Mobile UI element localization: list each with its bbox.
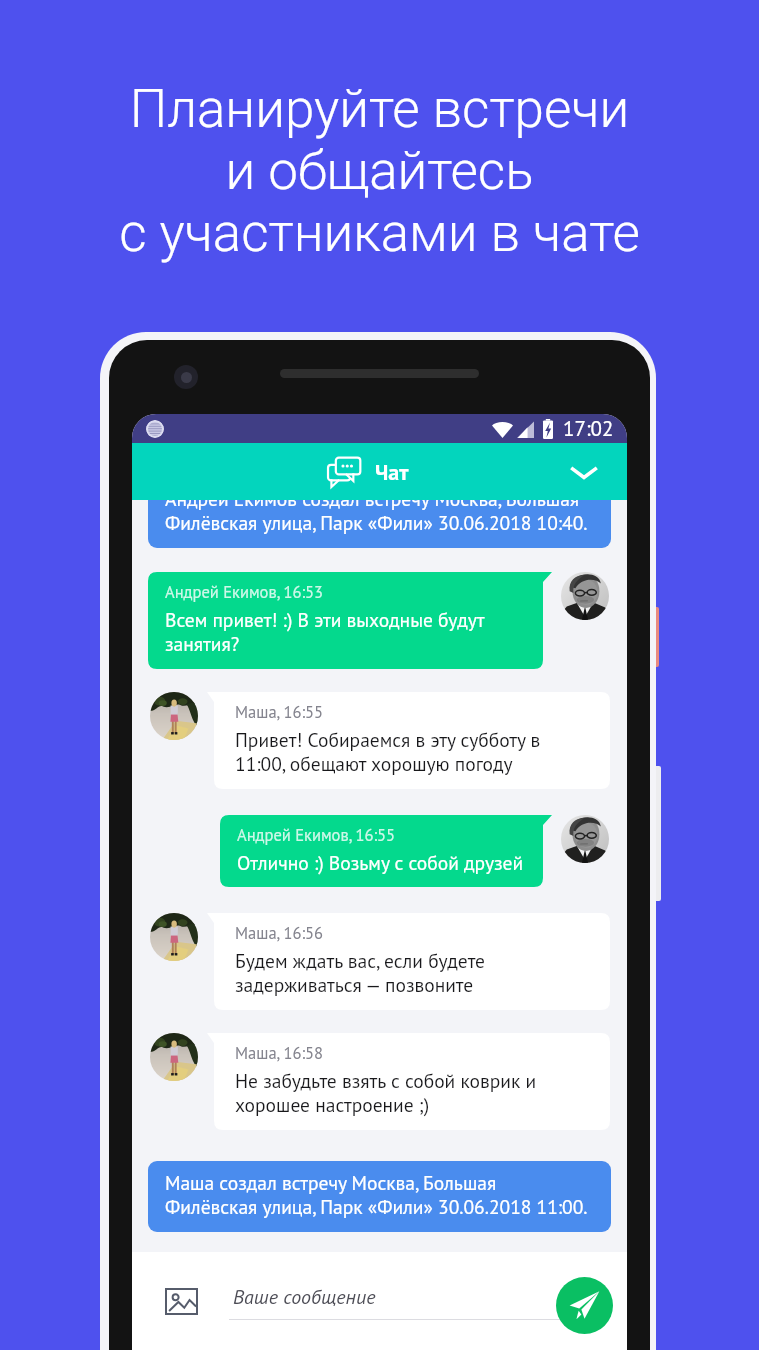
button[interactable]: Attach image [160,1280,202,1322]
button[interactable]: Маша, 16:56 [207,913,610,1010]
staticText: Привет! Собираемся в эту субботу в 11:00… [235,727,541,777]
button[interactable]: Маша создал встречу Москва, Большая Филё… [148,1161,611,1232]
staticText: Маша, 16:58 [235,1042,323,1063]
button[interactable]: Андрей Екимов создал встречу Москва, Бол… [148,477,611,548]
staticText: Всем привет! :) В эти выходные будут зан… [165,607,485,657]
staticText: 17:02 [563,415,614,442]
staticText: Маша, 16:56 [235,922,323,943]
staticText: Планируйте встречи и общайтесь с участни… [119,78,640,264]
button[interactable]: Андрей Екимов, 16:53 [148,572,552,669]
button[interactable]: Маша, 16:58 [207,1033,610,1130]
staticText: Не забудьте взять с собой коврик и хорош… [235,1068,537,1118]
staticText: Андрей Екимов создал встречу Москва, Бол… [165,486,588,536]
staticText: Андрей Екимов, 16:55 [237,824,396,845]
staticText: Чат [375,458,409,486]
staticText: Будем ждать вас, если будете задерживать… [235,948,486,998]
button[interactable]: Маша, 16:55 [207,692,610,789]
button[interactable]: Send message [556,1277,613,1334]
button[interactable]: Collapse chat [563,451,605,493]
staticText: Ваше сообщение [233,1284,376,1310]
staticText: Маша создал встречу Москва, Большая Филё… [165,1170,588,1220]
staticText: Отлично :) Возьму с собой друзей [237,850,524,875]
button[interactable]: Чат [132,443,627,500]
button[interactable]: Андрей Екимов, 16:55 [220,815,552,887]
staticText: Андрей Екимов, 16:53 [165,581,324,602]
staticText: Маша, 16:55 [235,701,323,722]
